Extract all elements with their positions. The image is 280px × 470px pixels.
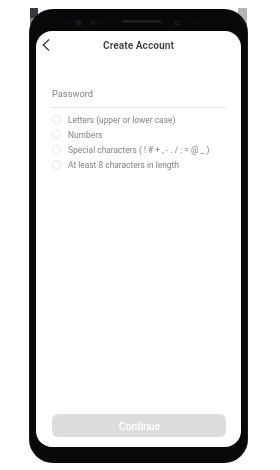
- button[interactable]: Letters (upper or lower case): [36, 112, 241, 127]
- button[interactable]: Back: [36, 35, 56, 55]
- button[interactable]: Continue: [52, 414, 226, 437]
- staticText: Letters (upper or lower case): [68, 115, 176, 125]
- staticText: Numbers: [68, 130, 103, 140]
- staticText: Special characters ( ! # + , - . / : = @…: [68, 145, 210, 155]
- staticText: At least 8 characters in length: [68, 160, 179, 170]
- button[interactable]: Special characters ( ! # + , - . / : = @…: [36, 142, 241, 157]
- button[interactable]: Numbers: [36, 127, 241, 142]
- staticText: Create Account: [103, 40, 174, 52]
- staticText: Password: [52, 88, 94, 99]
- button[interactable]: At least 8 characters in length: [36, 157, 241, 172]
- staticText: Continue: [119, 420, 160, 432]
